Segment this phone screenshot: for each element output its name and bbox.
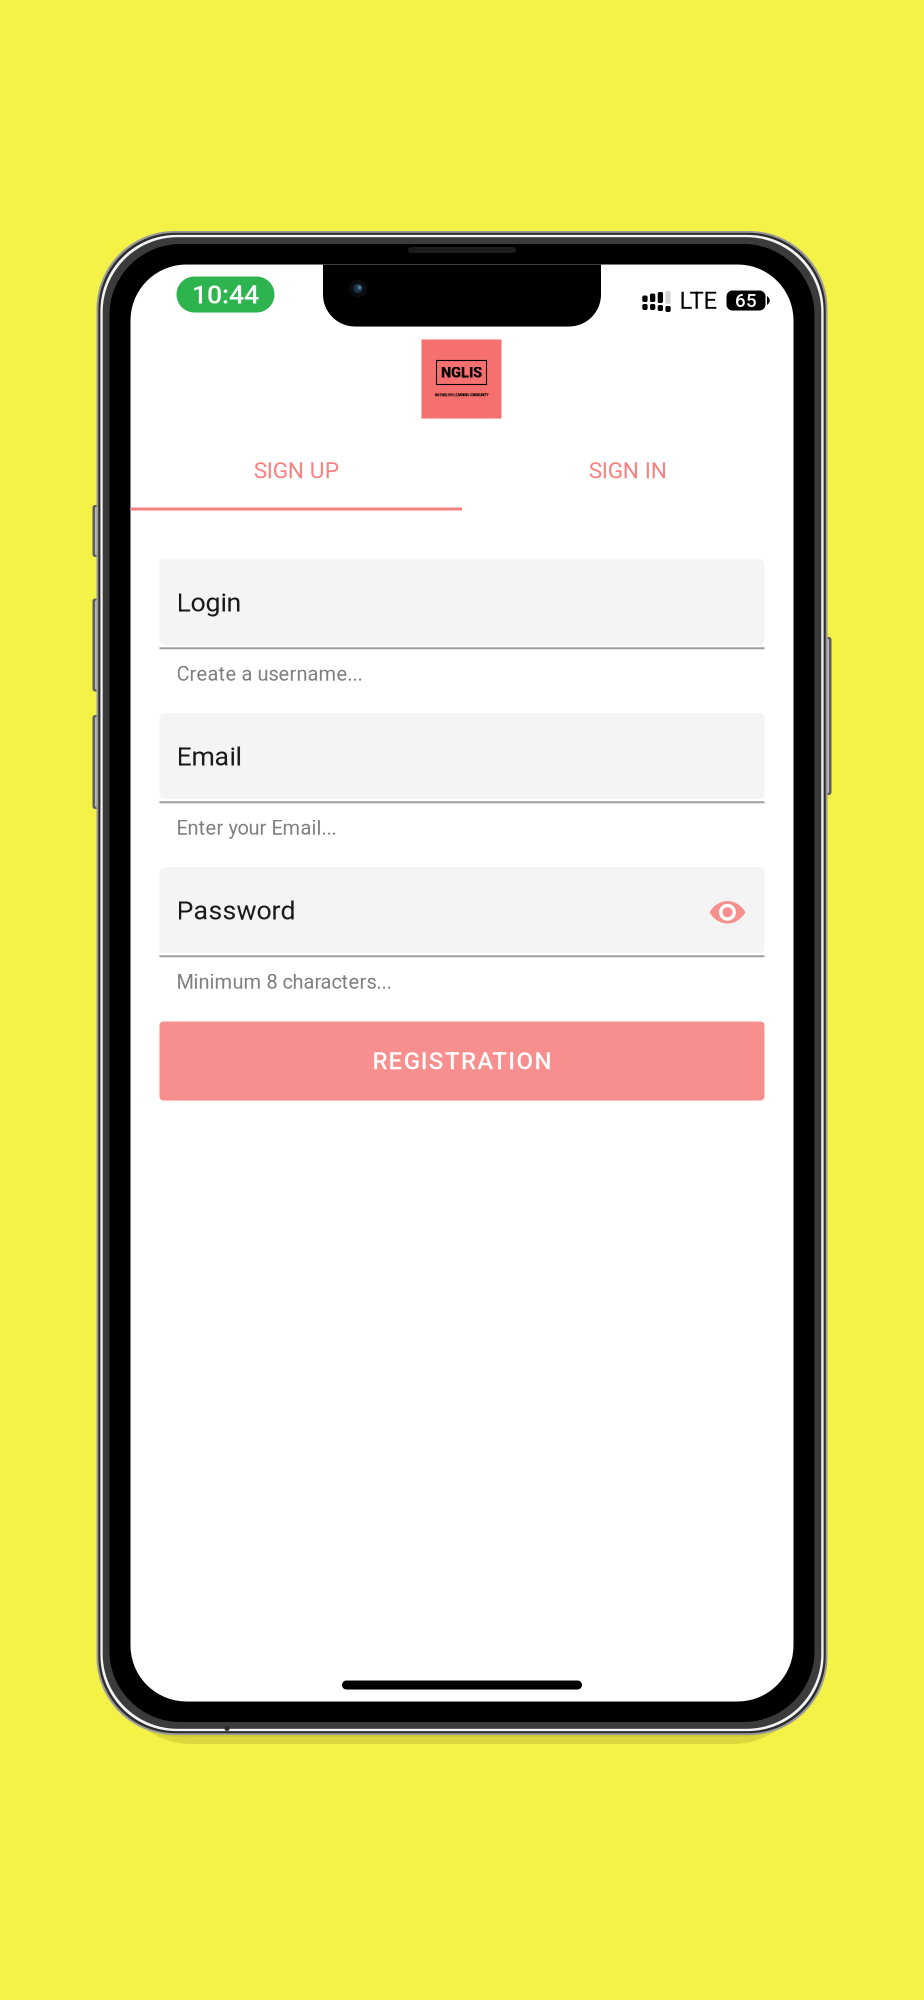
staticText: SIGN UP xyxy=(254,457,339,484)
button[interactable]: REGISTRATION xyxy=(159,1021,764,1100)
staticText: Email xyxy=(176,741,241,772)
button[interactable]: Password xyxy=(159,867,764,994)
staticText: AN ENGLISH LEARNING COMMUNITY xyxy=(434,392,488,397)
staticText: SIGN IN xyxy=(589,457,667,484)
staticText: Minimum 8 characters... xyxy=(176,970,391,994)
staticText: Create a username... xyxy=(176,662,362,686)
staticText: Login xyxy=(176,587,241,618)
button[interactable]: Login xyxy=(159,559,764,686)
staticText: LTE xyxy=(679,286,717,314)
button[interactable]: Email xyxy=(159,713,764,840)
button[interactable]: SIGN IN xyxy=(462,440,793,500)
staticText: 65 xyxy=(735,290,757,311)
staticText: 10:44 xyxy=(192,279,259,310)
staticText: Password xyxy=(176,895,295,926)
button[interactable]: SIGN UP xyxy=(130,440,462,500)
staticText: Enter your Email... xyxy=(176,816,336,840)
staticText: NGLIS xyxy=(441,364,482,381)
staticText: REGISTRATION xyxy=(372,1047,552,1075)
